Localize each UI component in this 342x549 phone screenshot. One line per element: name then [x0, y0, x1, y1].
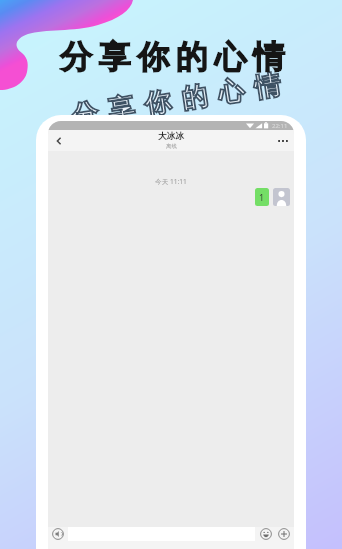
- button[interactable]: Avatar: [273, 188, 290, 206]
- button[interactable]: Emoji: [259, 527, 273, 541]
- staticText: 分享你的心情: [64, 67, 288, 134]
- staticText: 分享你的心情: [60, 37, 292, 77]
- button[interactable]: Voice: [51, 527, 65, 541]
- staticText: 1: [259, 191, 265, 203]
- staticText: 大冰冰: [158, 131, 184, 142]
- staticText: 今天 11:11: [48, 177, 294, 186]
- button[interactable]: 1: [255, 188, 269, 206]
- button[interactable]: Add: [277, 527, 291, 541]
- staticText: 22:11: [272, 122, 288, 130]
- staticText: 分享你的心情: [64, 67, 288, 134]
- button[interactable]: Back: [51, 133, 67, 149]
- button[interactable]: More options: [275, 133, 291, 149]
- staticText: 离线: [166, 143, 177, 150]
